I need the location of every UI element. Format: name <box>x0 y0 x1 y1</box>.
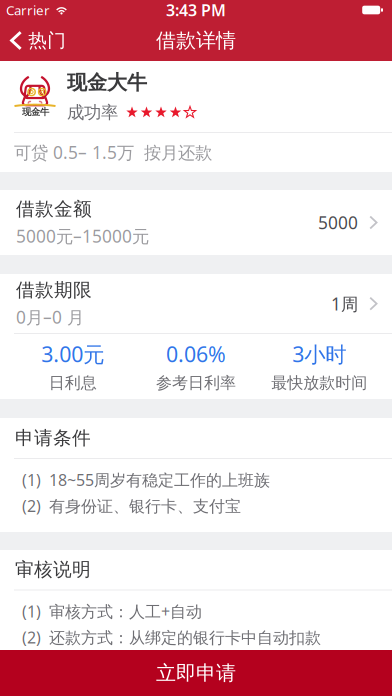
button[interactable]: 热门 <box>0 20 74 61</box>
staticText: 借款金额 <box>16 197 92 220</box>
staticText: 借款详情 <box>156 28 236 53</box>
staticText: 最快放款时间 <box>271 373 367 393</box>
staticText: 0.06% <box>166 340 226 368</box>
staticText: 可贷 0.5– 1.5万 按月还款 <box>14 141 212 164</box>
staticText: 3:43 PM <box>166 0 226 21</box>
staticText: 借款期限 <box>16 279 92 302</box>
staticText: 3小时 <box>292 340 346 368</box>
staticText: (2) 有身份证、银行卡、支付宝 <box>22 495 241 516</box>
staticText: (1) 审核方式：人工+自动 <box>22 601 202 622</box>
staticText: 现金大牛 <box>67 70 147 95</box>
staticText: 审核说明 <box>15 558 91 581</box>
staticText: 立即申请 <box>156 661 236 685</box>
staticText: 现金牛 <box>22 106 49 118</box>
button[interactable]: 立即申请 <box>0 650 392 696</box>
button[interactable]: 借款期限 <box>0 274 392 333</box>
staticText: 5000 <box>318 211 358 234</box>
staticText: 成功率 <box>67 102 118 123</box>
staticText: 3.00元 <box>41 340 104 368</box>
staticText: 日利息 <box>49 373 97 393</box>
button[interactable]: 借款金额 <box>0 190 392 255</box>
staticText: 申请条件 <box>15 426 91 449</box>
staticText: 热门 <box>28 29 66 52</box>
staticText: (2) 还款方式：从绑定的银行卡中自动扣款 <box>22 627 321 648</box>
staticText: 1周 <box>331 292 358 315</box>
staticText: 参考日利率 <box>156 373 236 393</box>
staticText: Carrier <box>6 1 50 19</box>
staticText: (1) 18~55周岁有稳定工作的上班族 <box>22 469 270 490</box>
staticText: 0月–0 月 <box>16 306 84 329</box>
staticText: 5000元–15000元 <box>16 224 149 247</box>
